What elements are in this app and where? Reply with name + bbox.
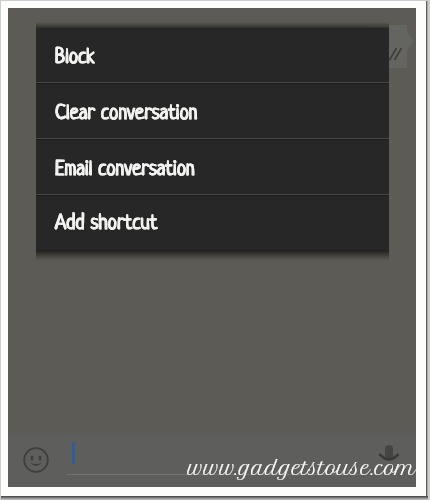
staticText: Email conversation: [55, 159, 195, 181]
button[interactable]: Clear conversation: [36, 83, 389, 140]
staticText: Block: [55, 47, 95, 69]
staticText: Clear conversation: [55, 103, 198, 125]
button[interactable]: [66, 441, 366, 475]
staticText: Add shortcut: [55, 213, 158, 235]
button[interactable]: Block: [36, 28, 389, 84]
staticText: Email conversation: [55, 159, 195, 181]
button[interactable]: Insert emoji: [20, 444, 52, 476]
staticText: www.gadgetstouse.com: [188, 456, 416, 480]
button[interactable]: Voice input: [373, 439, 405, 471]
button[interactable]: Email conversation: [36, 139, 389, 196]
button[interactable]: Add shortcut: [36, 194, 389, 250]
staticText: Clear conversation: [55, 103, 198, 125]
staticText: Block: [55, 47, 95, 69]
staticText: Add shortcut: [55, 213, 158, 235]
